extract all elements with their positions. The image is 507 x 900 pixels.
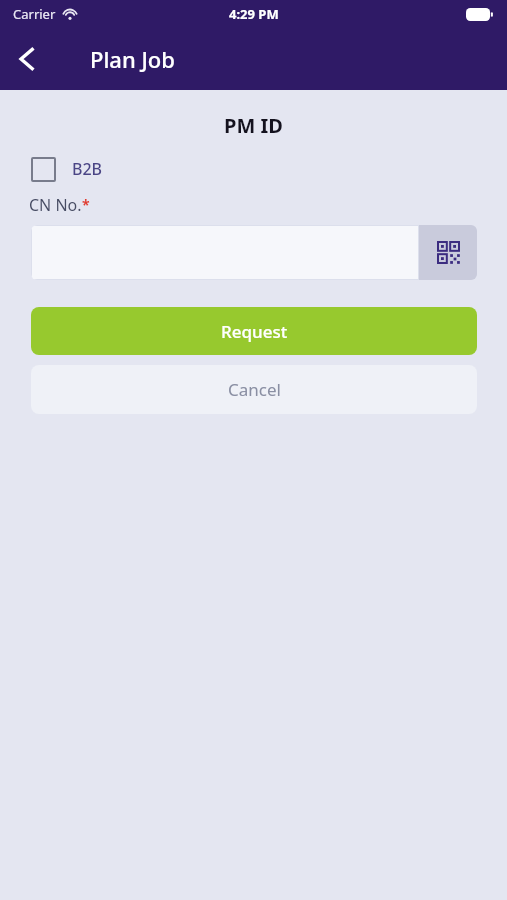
button[interactable]: Cancel — [31, 365, 477, 414]
staticText: Plan Job — [90, 44, 175, 74]
staticText: * — [82, 195, 90, 214]
button[interactable]: Scan QR code — [419, 225, 477, 280]
staticText: Cancel — [228, 378, 281, 401]
button[interactable]: B2B — [31, 152, 103, 186]
staticText: PM ID — [0, 112, 507, 139]
staticText: Carrier — [13, 5, 56, 23]
staticText: Request — [221, 320, 288, 343]
button[interactable]: Back — [0, 32, 54, 86]
staticText: 4:29 PM — [229, 5, 279, 23]
staticText: B2B — [72, 158, 103, 180]
button[interactable]: Request — [31, 307, 477, 355]
staticText: CN No. — [29, 194, 82, 216]
button[interactable]: CN No. input — [31, 225, 419, 280]
